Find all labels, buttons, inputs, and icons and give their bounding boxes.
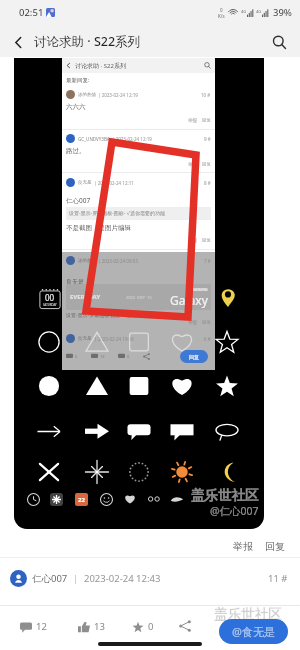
button[interactable]: Search [266,29,292,55]
button[interactable]: 回复 [262,538,288,554]
button[interactable]: Tool 3 [95,488,117,510]
staticText: | 2023-02-24 12:19 [98,92,138,98]
button[interactable]: Tool 6 [166,488,188,510]
button[interactable]: Shape 0 2 [124,327,154,357]
button[interactable]: 0 [130,618,156,635]
button[interactable]: Shape 2 1 [82,416,112,446]
button[interactable]: Shape 2 4 [212,416,242,446]
staticText: 冰的热情 [78,92,96,98]
staticText: 0 [148,620,154,633]
staticText: 11 # [268,572,288,585]
staticText: 讨论求助 · S22系列 [75,62,126,70]
staticText: SATURDAY [43,303,57,307]
staticText: 2023-02-24 12:43 [84,572,161,585]
staticText: 12 [36,620,47,633]
staticText: 举报 [233,540,253,552]
staticText: EVERYDAY [70,293,101,301]
button[interactable]: 13 [76,618,107,635]
button[interactable]: Shape 3 3 [167,457,197,487]
staticText: 回复 [202,162,211,168]
staticText: 00 [45,292,55,303]
button[interactable]: Tool 0 [22,488,44,510]
button[interactable]: Shape 2 0 [34,416,64,446]
staticText: 冰的热情 [78,258,96,264]
staticText: 回复 [189,354,199,360]
button[interactable]: Back [5,29,31,55]
staticText: | 2023-02-24 12:11 [94,180,134,186]
button[interactable]: Shape 0 0 [34,327,64,357]
button[interactable]: Shape 1 1 [82,371,112,401]
button[interactable]: Shape 2 2 [124,416,154,446]
button[interactable]: Shape 1 4 [212,371,242,401]
staticText: 8 # [204,180,211,186]
staticText: 最新回复: [66,76,90,84]
button[interactable]: Shape 3 0 [34,457,64,487]
staticText: 良无是 [78,180,92,186]
staticText: 举报 [188,118,197,124]
staticText: 39% [273,6,292,19]
staticText: 02:51 [19,6,44,19]
button[interactable]: Shape 0 1 [82,327,112,357]
button[interactable]: Shape 1 3 [167,371,197,401]
button[interactable]: 举报 [230,538,256,554]
staticText: 回复 [202,118,211,124]
staticText: 路过。 [66,147,86,155]
staticText: 22 [78,496,85,504]
button[interactable]: Shape 0 3 [167,327,197,357]
staticText: 讨论求助 · S22系列 [34,33,141,50]
staticText: 4G [241,9,247,14]
staticText: 4G [256,9,262,14]
staticText: 盖乐世社区 [214,606,282,623]
staticText: 盖乐世社区 [191,487,259,504]
button[interactable]: Shape 0 4 [212,327,242,357]
button[interactable]: 12 [18,618,49,635]
staticText: 六六六 [66,103,86,111]
staticText: 0 [220,7,223,13]
staticText: 举报 [188,162,197,168]
staticText: @仁心007 [210,504,259,518]
staticText: 举报 [188,238,197,244]
staticText: 6 # [204,336,211,342]
staticText: 良无是 [78,336,92,342]
staticText: 设置-显示-屏幕面板-图标- √选你需要的功能 [66,312,162,319]
staticText: 5 [75,354,78,359]
staticText: 7 # [204,258,211,264]
staticText: 仁心007 [32,572,68,585]
button[interactable]: Tool 2 [70,488,92,510]
staticText: GC_UNDVY3BA [78,136,110,142]
button[interactable]: Shape 1 0 [34,371,64,401]
button[interactable]: @食无是 [219,619,288,644]
button[interactable]: Tool 4 [119,488,141,510]
staticText: 10 # [201,92,211,98]
staticText: 回复 [202,238,211,244]
staticText: 0 [127,354,130,359]
button[interactable]: Tool 1 [45,488,67,510]
button[interactable]: Shape 3 2 [124,457,154,487]
staticText: 举报 [188,320,197,326]
staticText: | [73,572,79,585]
staticText: 13 [94,620,105,633]
staticText: 仁心007 [66,196,91,205]
staticText: 良无是 [66,278,84,286]
button[interactable]: Shape 3 4 [212,457,242,487]
staticText: 9 # [204,136,211,142]
staticText: @食无是 [232,624,275,639]
button[interactable]: Shape 2 3 [167,416,197,446]
button[interactable]: Shape 1 2 [124,371,154,401]
staticText: 回复 [202,320,211,326]
staticText: 回复 [265,540,285,552]
staticText: 2022 EDP 13 [126,295,152,300]
button[interactable]: Tool 5 [143,488,165,510]
staticText: | 2023-02-24 19:36 [94,336,134,342]
staticText: 设置-显示-屏幕面板-图标- √选你需要的功能 [69,210,165,217]
staticText: SAMSUNG [190,287,208,292]
button[interactable]: Shape 3 1 [82,457,112,487]
staticText: 13 [100,354,105,359]
button[interactable]: Share [176,617,194,635]
staticText: Galaxy [170,292,208,308]
staticText: | 2023-02-24 09:53 [98,258,138,264]
staticText: 不是截图，是图片编辑 [66,224,131,232]
staticText: | 2023-02-24 12:19 [112,136,152,142]
staticText: K/s [218,13,225,19]
